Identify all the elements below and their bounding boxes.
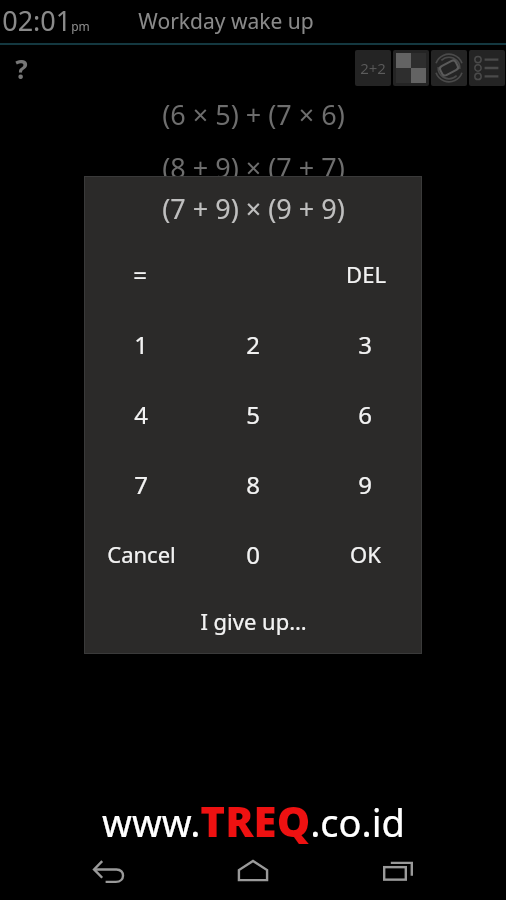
staticText: 3 (358, 328, 372, 361)
staticText: 4 (134, 398, 148, 431)
button[interactable]: Difficulty (393, 50, 429, 86)
button[interactable]: Help (4, 51, 38, 85)
staticText: 1 (134, 328, 148, 361)
button[interactable]: Recent apps (362, 848, 434, 894)
button[interactable]: 1 (85, 309, 197, 379)
button[interactable]: Shake to snooze (431, 50, 467, 86)
staticText: Workday wake up (138, 7, 314, 36)
staticText: 02:01pm (2, 2, 90, 39)
staticText: Cancel (107, 539, 176, 569)
button[interactable]: = (85, 239, 195, 309)
button[interactable]: 6 (309, 379, 421, 449)
staticText: 2 (246, 328, 260, 361)
button[interactable]: Home (217, 848, 289, 894)
button[interactable]: Back (73, 848, 145, 894)
button[interactable]: Task list (469, 50, 505, 86)
staticText: DEL (346, 259, 386, 289)
staticText: www.TREQ.co.id (102, 792, 405, 848)
staticText: 0 (246, 538, 260, 571)
button[interactable]: 7 (85, 449, 197, 519)
staticText: 8 (246, 468, 260, 501)
button[interactable]: DEL (311, 239, 421, 309)
button[interactable]: I give up… (163, 589, 343, 653)
button[interactable]: Cancel (85, 519, 197, 589)
staticText: (8 + 9) × (7 + 7) (162, 149, 345, 186)
staticText: ? (15, 51, 28, 85)
staticText: 6 (358, 398, 372, 431)
button[interactable]: 5 (197, 379, 309, 449)
button[interactable]: 8 (197, 449, 309, 519)
staticText: I give up… (200, 606, 307, 636)
button[interactable]: OK (309, 519, 421, 589)
button[interactable]: 2 (197, 309, 309, 379)
staticText: (6 × 5) + (7 × 6) (162, 96, 345, 133)
staticText: (7 + 9) × (9 + 9) (162, 190, 345, 227)
staticText: 9 (358, 468, 372, 501)
button[interactable]: 9 (309, 449, 421, 519)
button[interactable]: 0 (197, 519, 309, 589)
button[interactable]: 4 (85, 379, 197, 449)
staticText: 2+2 (360, 58, 386, 78)
staticText: 5 (246, 398, 260, 431)
button[interactable]: Problem type (355, 50, 391, 86)
staticText: 7 (134, 468, 148, 501)
staticText: OK (350, 539, 381, 569)
button[interactable]: 3 (309, 309, 421, 379)
staticText: = (133, 258, 147, 291)
